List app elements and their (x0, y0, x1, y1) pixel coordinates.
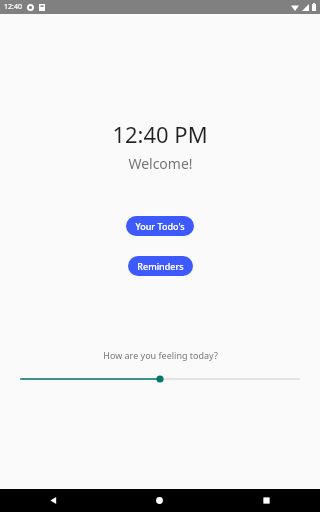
staticText: How are you feeling today? (103, 349, 218, 361)
staticText: Your Todo's (135, 220, 185, 232)
staticText: 12:40 PM (112, 119, 208, 149)
button[interactable]: Recent apps (213, 489, 320, 512)
button[interactable]: Your Todo's (126, 216, 194, 236)
button[interactable]: Back (0, 489, 106, 512)
button[interactable]: Home (106, 489, 213, 512)
staticText: Welcome! (128, 154, 193, 173)
button[interactable]: Reminders (128, 256, 193, 276)
button[interactable]: Mood slider (0, 369, 320, 389)
staticText: Reminders (137, 260, 184, 272)
staticText: 12:40 (4, 2, 22, 12)
